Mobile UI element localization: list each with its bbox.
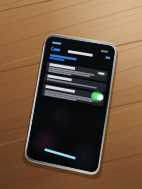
button[interactable]: Phone screen — [0, 0, 142, 189]
other: Photo of a phone on a wooden table — [0, 0, 142, 189]
